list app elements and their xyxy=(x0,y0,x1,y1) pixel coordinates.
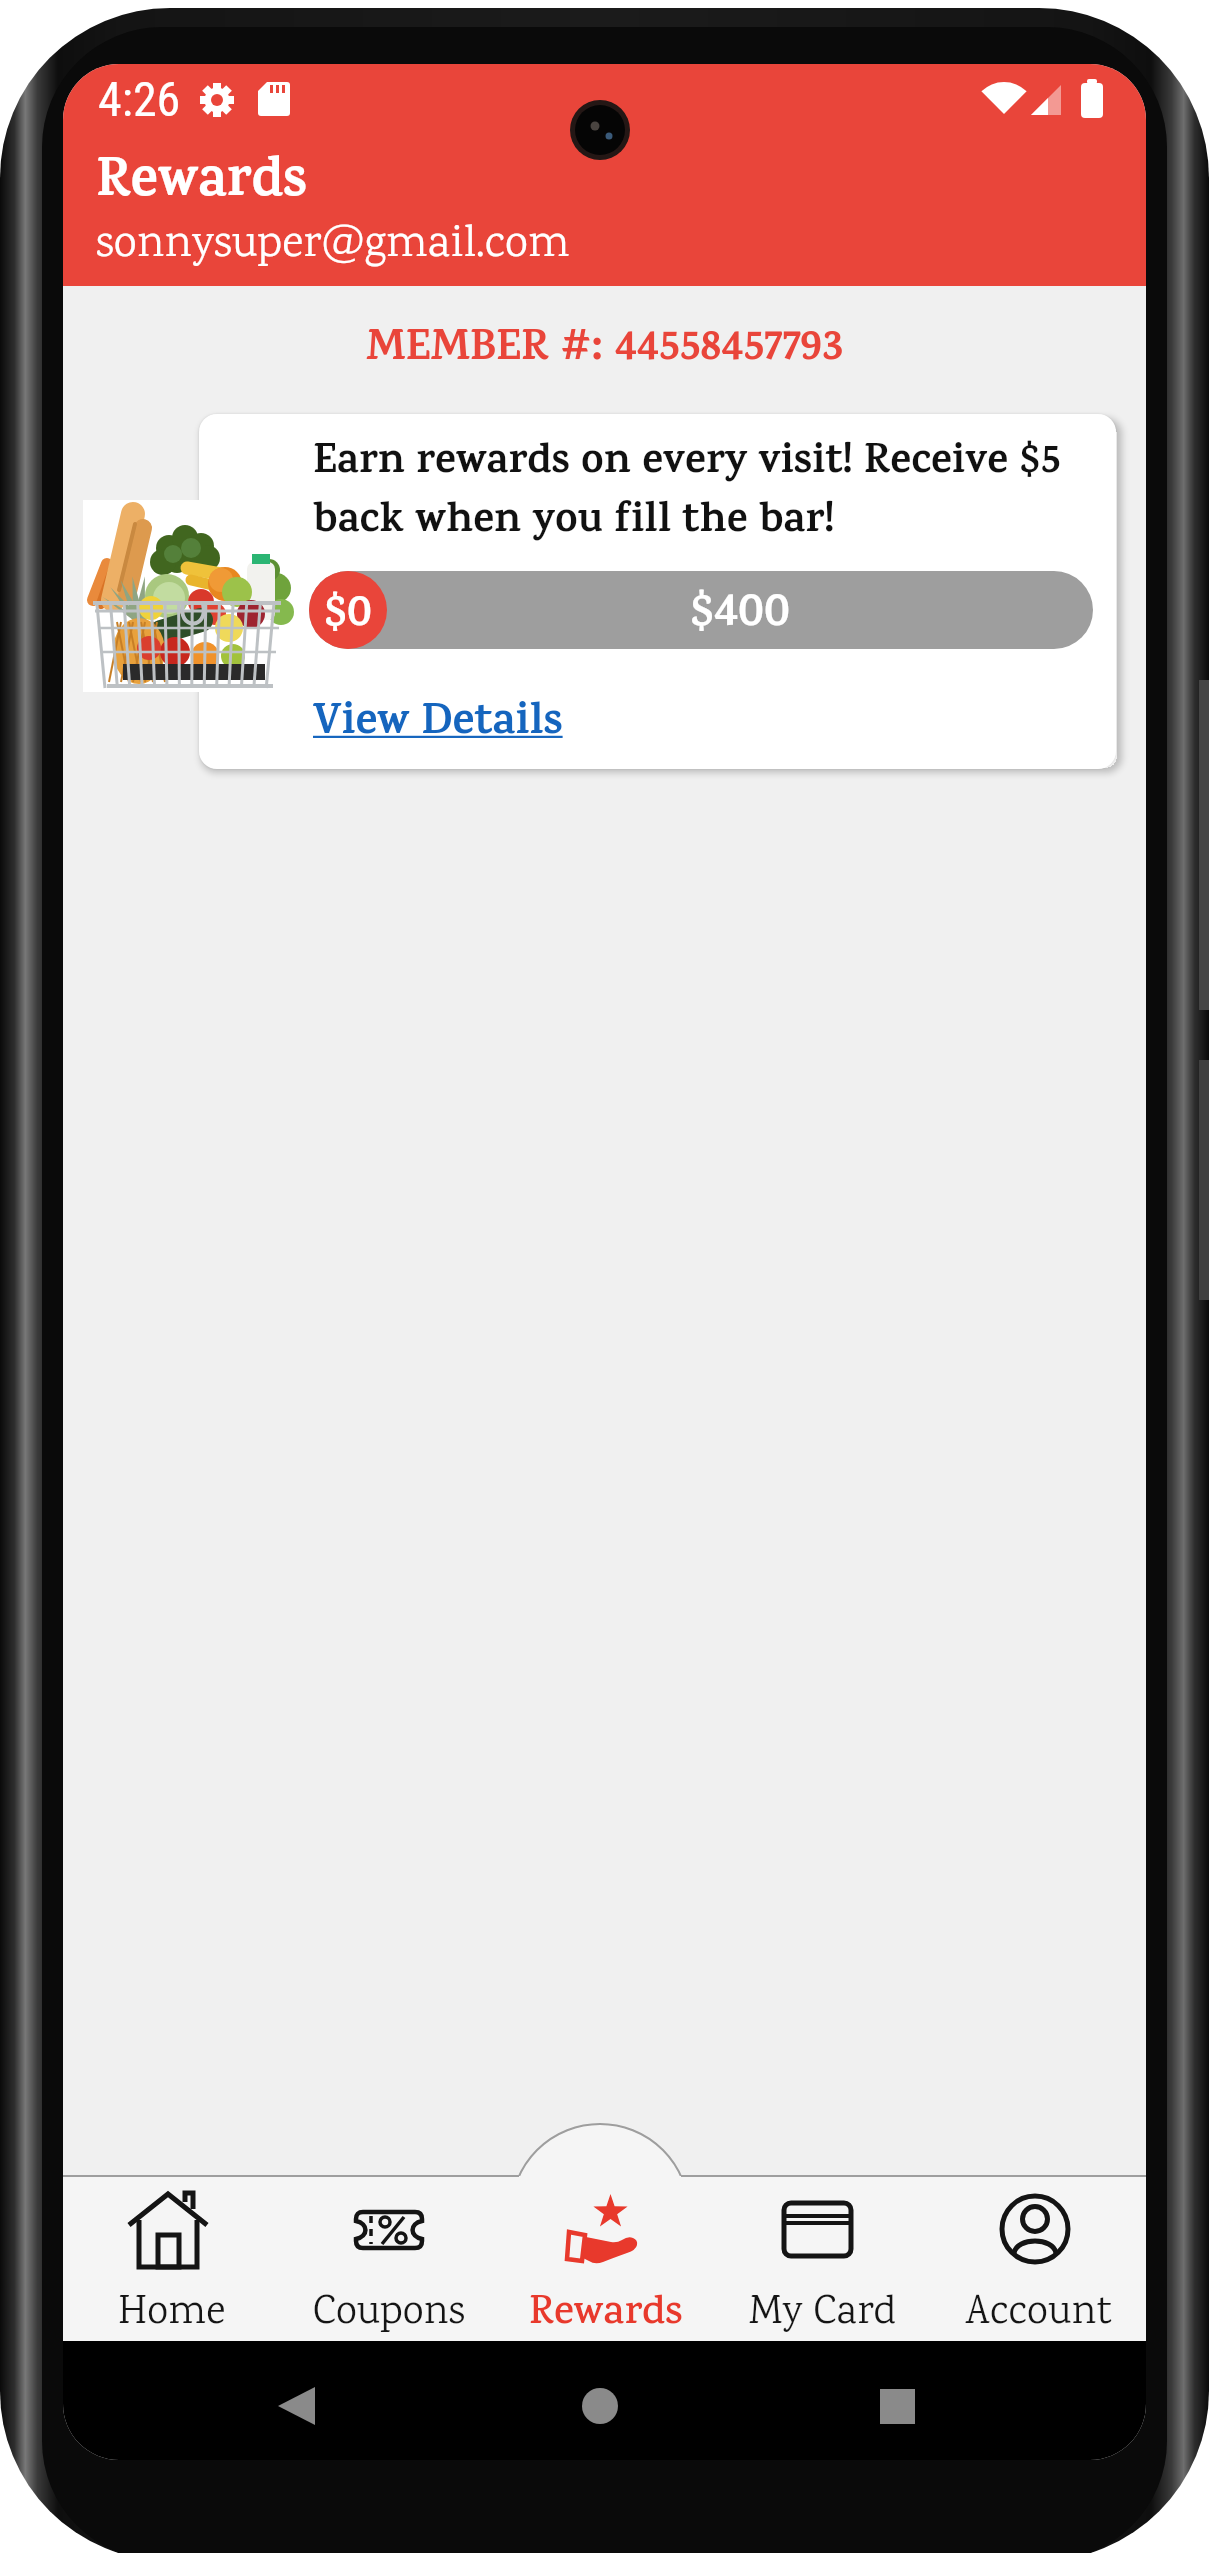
staticText: My Card xyxy=(749,2284,896,2341)
staticText: Account xyxy=(965,2284,1112,2341)
button[interactable]: Account xyxy=(931,2176,1146,2341)
button[interactable]: Rewards xyxy=(497,2176,714,2341)
staticText: $400 xyxy=(690,578,790,649)
button[interactable]: Coupons xyxy=(280,2176,497,2341)
button[interactable]: View Details xyxy=(313,690,563,762)
staticText: Coupons xyxy=(313,2284,465,2341)
button[interactable]: My Card xyxy=(714,2176,931,2341)
staticText: $0 xyxy=(324,580,372,649)
staticText: Earn rewards on every visit! Receive $5 xyxy=(313,431,1061,499)
staticText: back when you fill the bar! xyxy=(313,490,835,558)
staticText: Rewards xyxy=(529,2284,683,2341)
staticText: Home xyxy=(118,2284,226,2341)
staticText: MEMBER #: 44558457793 xyxy=(63,316,1146,388)
staticText: Rewards xyxy=(96,141,307,231)
staticText: 4:26 xyxy=(98,71,181,127)
button[interactable]: Home xyxy=(63,2176,280,2341)
staticText: sonnysuper@gmail.com xyxy=(96,213,570,278)
